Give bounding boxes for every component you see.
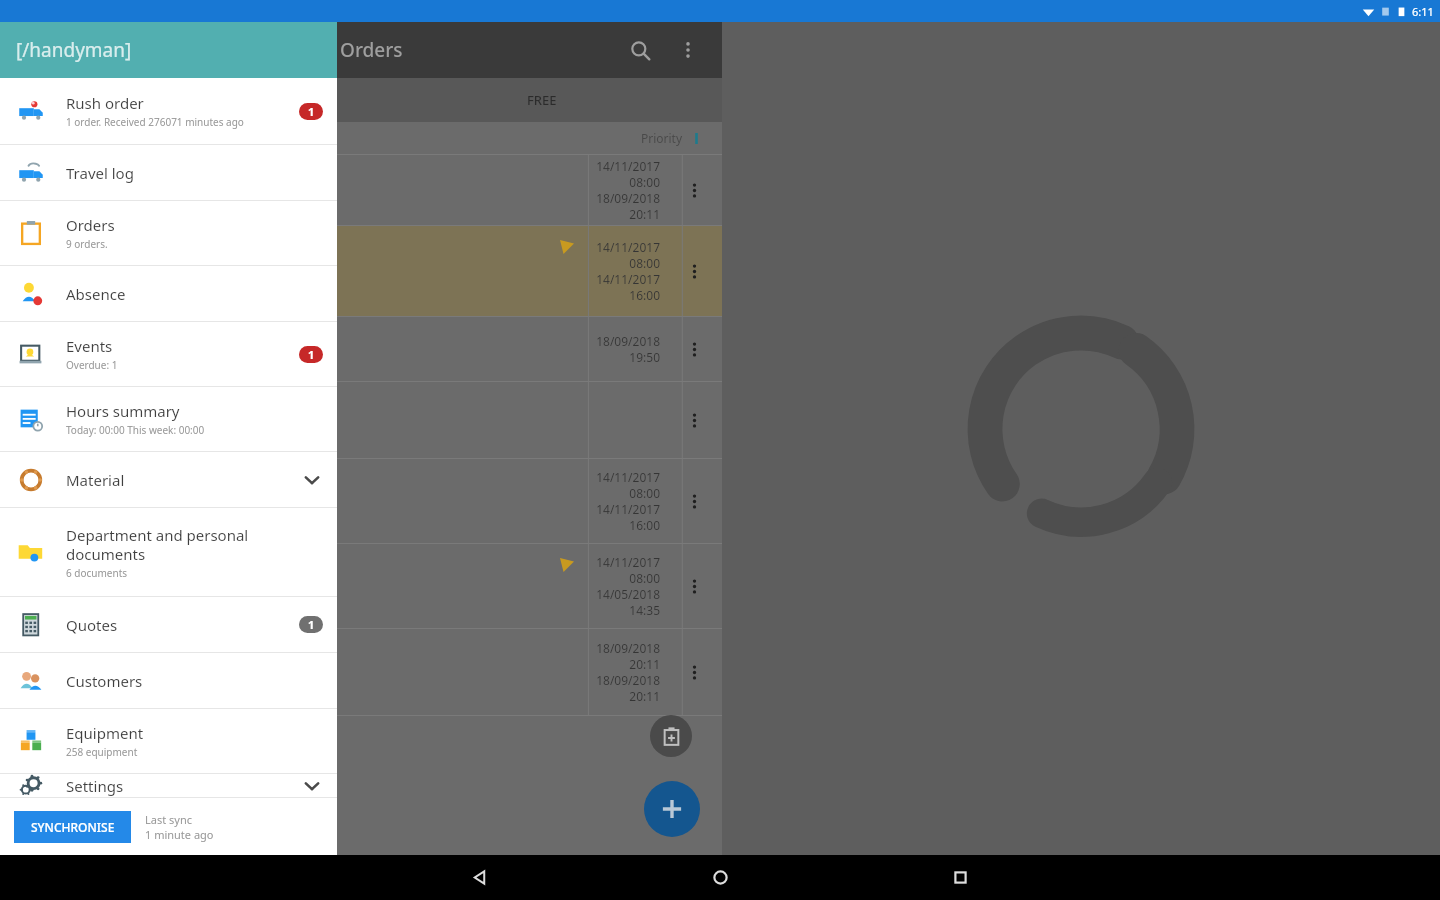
button[interactable]: Search <box>616 26 664 74</box>
staticText: 20:11 <box>629 206 660 222</box>
button[interactable]: Back <box>360 855 600 900</box>
staticText: 14/11/2017 <box>596 469 660 485</box>
staticText: 16:00 <box>629 287 660 303</box>
staticText: 1 <box>308 104 315 119</box>
button[interactable]: 14/11/2017 <box>0 226 722 316</box>
staticText: Priority <box>641 130 683 146</box>
button[interactable]: Travel log <box>0 145 337 200</box>
button[interactable]: 18/09/2018 <box>0 317 722 381</box>
staticText: 6:11 <box>1412 4 1434 19</box>
button[interactable]: Material <box>0 452 337 507</box>
button[interactable]: 14/11/2017 <box>0 544 722 628</box>
staticText: 258 equipment <box>66 745 138 759</box>
button[interactable]: FREE <box>361 78 722 122</box>
staticText: Hours summary <box>66 401 180 421</box>
staticText: 18/09/2018 <box>596 640 660 656</box>
button[interactable]: INTERNAL <box>0 78 361 122</box>
staticText: Orders <box>340 37 403 63</box>
button[interactable]: Home <box>600 855 840 900</box>
button[interactable]: SYNCHRONISE <box>14 811 131 843</box>
staticText: Settings <box>66 776 124 796</box>
button[interactable]: Row menu <box>680 257 708 285</box>
staticText: Equipment <box>66 723 144 743</box>
staticText: SYNCHRONISE <box>31 819 115 835</box>
staticText: 1 <box>308 617 315 632</box>
staticText: 20:11 <box>629 656 660 672</box>
button[interactable]: Row menu <box>680 487 708 515</box>
button[interactable]: Row menu <box>680 176 708 204</box>
button[interactable]: Customers <box>0 653 337 708</box>
button[interactable]: Add order <box>644 781 700 837</box>
staticText: 14/11/2017 <box>596 501 660 517</box>
button[interactable]: Absence <box>0 266 337 321</box>
staticText: Rush order <box>66 93 144 113</box>
button[interactable]: Settings <box>0 774 337 797</box>
staticText: Quotes <box>66 615 118 635</box>
button[interactable]: Priority <box>0 122 722 154</box>
staticText: [/handyman] <box>16 37 132 63</box>
staticText: 14:35 <box>629 602 660 618</box>
button[interactable]: 14/11/2017 <box>0 459 722 543</box>
staticText: 14/11/2017 <box>596 158 660 174</box>
staticText: Orders <box>66 215 115 235</box>
button[interactable]: Rush order <box>0 78 337 144</box>
staticText: 18/09/2018 <box>596 333 660 349</box>
staticText: Today: 00:00 This week: 00:00 <box>66 423 205 437</box>
button[interactable]: Row menu <box>680 572 708 600</box>
button[interactable]: Events <box>0 322 337 386</box>
staticText: 18/09/2018 <box>596 190 660 206</box>
staticText: 9 orders. <box>66 237 108 251</box>
button[interactable]: Department and personal documents <box>0 508 337 596</box>
button[interactable]: Row menu <box>680 658 708 686</box>
staticText: 08:00 <box>629 255 660 271</box>
staticText: 08:00 <box>629 485 660 501</box>
staticText: 20:11 <box>629 688 660 704</box>
button[interactable]: Equipment <box>0 709 337 773</box>
button[interactable]: 14/11/2017 <box>0 155 722 225</box>
button[interactable]: Row menu <box>680 335 708 363</box>
staticText: Department and personal documents <box>66 525 323 564</box>
button[interactable]: Row menu <box>0 382 722 458</box>
staticText: 08:00 <box>629 174 660 190</box>
staticText: 1 <box>308 347 315 362</box>
staticText: 19:50 <box>629 349 660 365</box>
staticText: Absence <box>66 284 126 304</box>
staticText: Customers <box>66 671 143 691</box>
button[interactable]: Quotes <box>0 597 337 652</box>
staticText: 1 order. Received 276071 minutes ago <box>66 115 244 129</box>
button[interactable]: [/handyman] <box>0 22 337 78</box>
staticText: 14/05/2018 <box>596 586 660 602</box>
button[interactable]: Recent apps <box>840 855 1080 900</box>
button[interactable]: New task <box>650 715 692 757</box>
staticText: 14/11/2017 <box>596 239 660 255</box>
staticText: 14/11/2017 <box>596 554 660 570</box>
staticText: Travel log <box>66 163 134 183</box>
staticText: Last sync <box>145 812 192 827</box>
button[interactable]: Hours summary <box>0 387 337 451</box>
button[interactable]: More options <box>664 26 712 74</box>
staticText: Overdue: 1 <box>66 358 118 372</box>
staticText: 1 minute ago <box>145 827 214 842</box>
staticText: 6 documents <box>66 566 128 580</box>
button[interactable]: Row menu <box>680 406 708 434</box>
staticText: 18/09/2018 <box>596 672 660 688</box>
staticText: 16:00 <box>629 517 660 533</box>
staticText: FREE <box>527 91 557 109</box>
staticText: Events <box>66 336 113 356</box>
staticText: Material <box>66 470 125 490</box>
staticText: 14/11/2017 <box>596 271 660 287</box>
staticText: 08:00 <box>629 570 660 586</box>
button[interactable]: Orders <box>0 201 337 265</box>
button[interactable]: 18/09/2018 <box>0 629 722 715</box>
